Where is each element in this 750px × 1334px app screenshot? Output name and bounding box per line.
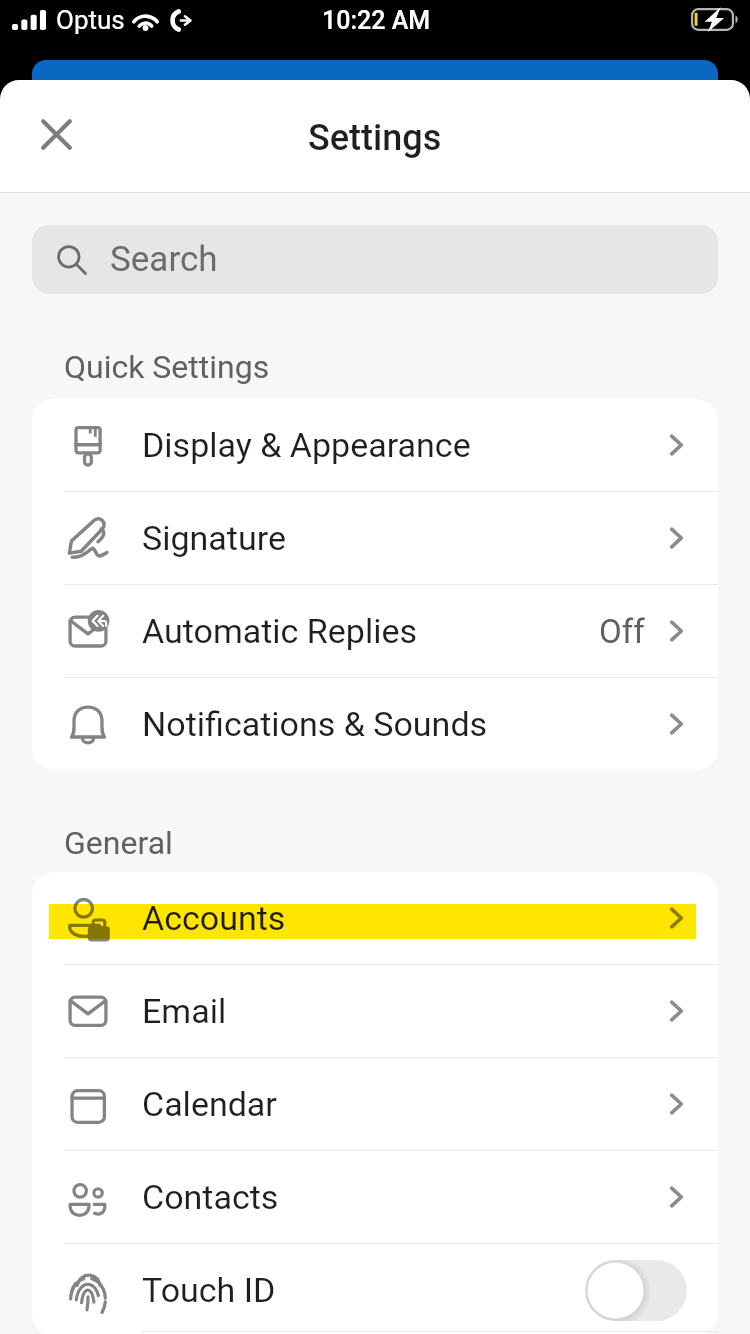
staticText: Quick Settings [64,348,270,386]
staticText: Notifications & Sounds [142,704,488,744]
staticText: Settings [308,117,442,159]
staticText: Calendar [142,1084,277,1124]
staticText: Display & Appearance [142,425,471,465]
button[interactable]: Close [20,98,92,170]
staticText: Contacts [142,1177,279,1217]
staticText: Accounts [142,898,286,938]
button[interactable]: Email [32,965,718,1057]
staticText: Automatic Replies [142,611,418,651]
staticText: Optus [56,5,125,35]
staticText: Off [599,612,645,651]
button[interactable]: Contacts [32,1151,718,1243]
staticText: Search [110,239,218,280]
staticText: Email [142,991,227,1031]
button[interactable]: Touch ID [32,1244,718,1334]
staticText: Signature [142,518,286,558]
button[interactable]: Automatic Replies [32,585,718,677]
button[interactable]: Signature [32,492,718,584]
button[interactable]: Notifications & Sounds [32,678,718,770]
button[interactable]: Calendar [32,1058,718,1150]
button[interactable]: Touch ID toggle [585,1260,687,1321]
button[interactable]: Display & Appearance [32,399,718,491]
staticText: General [64,824,173,862]
button[interactable]: Search [32,225,718,294]
staticText: 10:22 AM [322,6,431,35]
button[interactable]: Accounts [32,872,718,964]
staticText: Touch ID [142,1270,276,1310]
